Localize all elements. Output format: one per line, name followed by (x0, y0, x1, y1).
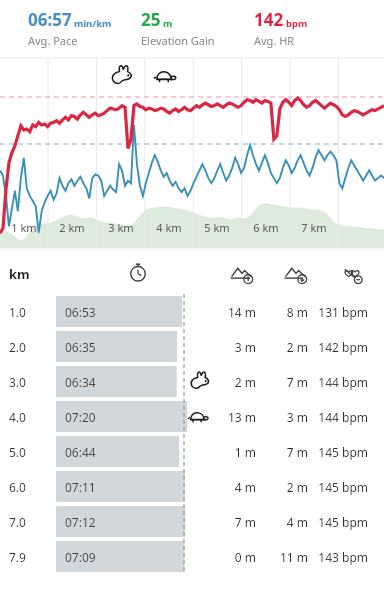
staticText: 07:09 (65, 549, 96, 565)
staticText: 6 km (246, 220, 286, 235)
staticText: 7 m (263, 374, 308, 390)
staticText: 11 m (263, 549, 308, 565)
button[interactable]: Duration (127, 261, 149, 283)
staticText: 7.0 (9, 514, 26, 530)
staticText: 3.0 (9, 374, 26, 390)
staticText: 143 bpm (305, 549, 368, 565)
staticText: 1 km (4, 220, 44, 235)
staticText: 06:35 (65, 339, 96, 355)
staticText: 7 m (263, 444, 308, 460)
staticText: 2 m (263, 339, 308, 355)
staticText: km (9, 265, 30, 283)
staticText: min/km (74, 17, 112, 30)
staticText: Avg. HR (254, 33, 295, 48)
staticText: 07:20 (65, 409, 96, 425)
staticText: 2 m (206, 374, 256, 390)
staticText: 144 bpm (305, 409, 368, 425)
staticText: m (163, 17, 173, 30)
staticText: 1 m (206, 444, 256, 460)
staticText: 3 m (263, 409, 308, 425)
button[interactable]: 5.0 (0, 434, 384, 469)
button[interactable]: 25 (141, 8, 215, 48)
staticText: 06:44 (65, 444, 96, 460)
staticText: 7 m (206, 514, 256, 530)
button[interactable]: 06:57 (28, 8, 112, 48)
button[interactable]: 3.0 (0, 364, 384, 399)
button[interactable]: 6.0 (0, 469, 384, 504)
staticText: 13 m (206, 409, 256, 425)
button[interactable]: Elevation loss (283, 262, 309, 288)
staticText: 06:53 (65, 304, 96, 320)
staticText: 06:34 (65, 374, 96, 390)
staticText: 145 bpm (305, 514, 368, 530)
staticText: 7 km (294, 220, 334, 235)
staticText: 2.0 (9, 339, 26, 355)
button[interactable]: 1.0 (0, 294, 384, 329)
staticText: 5 km (197, 220, 237, 235)
staticText: 3 m (206, 339, 256, 355)
staticText: 0 m (206, 549, 256, 565)
button[interactable]: 2.0 (0, 329, 384, 364)
button[interactable]: 7.9 (0, 539, 384, 574)
staticText: 1.0 (9, 304, 26, 320)
staticText: Elevation Gain (141, 33, 215, 48)
staticText: 142 bpm (305, 339, 368, 355)
staticText: Avg. Pace (28, 33, 78, 48)
staticText: 4 m (206, 479, 256, 495)
staticText: 145 bpm (305, 479, 368, 495)
staticText: bpm (286, 17, 308, 30)
button[interactable]: 7.0 (0, 504, 384, 539)
staticText: 4 m (263, 514, 308, 530)
staticText: 7.9 (9, 549, 26, 565)
staticText: 6.0 (9, 479, 26, 495)
staticText: 06:57 (28, 8, 72, 31)
staticText: 25 (141, 8, 161, 31)
button[interactable]: 142 (254, 8, 308, 48)
staticText: 07:11 (65, 479, 96, 495)
staticText: 4 km (149, 220, 189, 235)
staticText: 131 bpm (305, 304, 368, 320)
staticText: 2 km (52, 220, 92, 235)
staticText: 3 km (101, 220, 141, 235)
staticText: 4.0 (9, 409, 26, 425)
staticText: 5.0 (9, 444, 26, 460)
button[interactable]: Average heart rate (339, 262, 365, 288)
button[interactable]: 4.0 (0, 399, 384, 434)
staticText: 145 bpm (305, 444, 368, 460)
staticText: 07:12 (65, 514, 96, 530)
staticText: 14 m (206, 304, 256, 320)
staticText: 144 bpm (305, 374, 368, 390)
staticText: 2 m (263, 479, 308, 495)
button[interactable]: Elevation gain (229, 262, 255, 288)
staticText: 142 (254, 8, 284, 31)
staticText: 8 m (263, 304, 308, 320)
